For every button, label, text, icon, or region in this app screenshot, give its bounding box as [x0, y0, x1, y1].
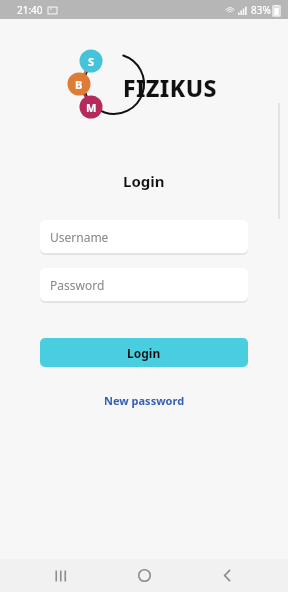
button[interactable]: Back	[205, 559, 249, 592]
staticText: B	[75, 77, 83, 92]
staticText: Username	[50, 229, 109, 245]
button[interactable]: Username	[40, 220, 248, 253]
button[interactable]: New password	[96, 389, 193, 412]
staticText: S	[88, 54, 95, 69]
staticText: M	[86, 100, 97, 115]
button[interactable]: Recent apps	[39, 559, 83, 592]
button[interactable]: Password	[40, 268, 248, 301]
staticText: 21:40	[17, 3, 43, 17]
staticText: FIZIKUS	[123, 72, 217, 103]
staticText: 83%	[251, 3, 271, 17]
button[interactable]: Home	[122, 559, 166, 592]
staticText: Password	[50, 277, 105, 293]
button[interactable]: Login	[40, 338, 248, 367]
staticText: Login	[127, 345, 161, 361]
staticText: Login	[123, 171, 165, 191]
